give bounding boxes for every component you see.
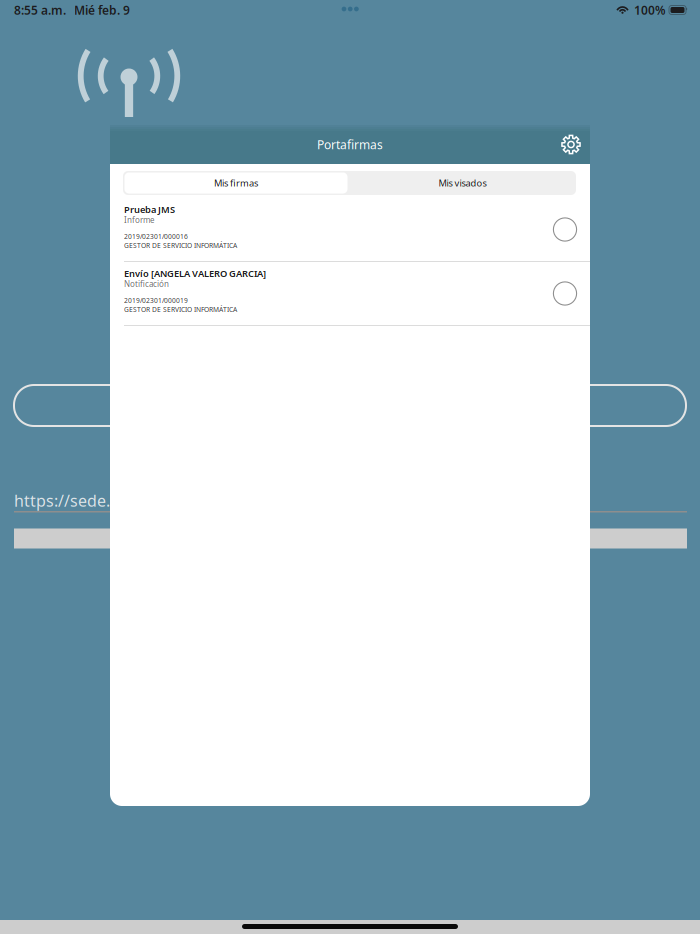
staticText: Portafirmas <box>317 136 383 152</box>
staticText: Mié feb. 9 <box>74 2 130 18</box>
staticText: Prueba JMS <box>124 203 175 216</box>
button[interactable]: Ajustes <box>552 125 590 164</box>
button[interactable]: Mis firmas <box>123 171 349 195</box>
staticText: 8:55 a.m. <box>14 2 66 18</box>
button[interactable]: Prueba JMS <box>110 198 590 262</box>
staticText: 2019/02301/000019 <box>124 296 188 305</box>
staticText: https://sede.murciaeduca.es/portafirmas <box>14 490 326 511</box>
staticText: 2019/02301/000016 <box>124 232 188 241</box>
staticText: Notificación <box>124 279 169 289</box>
staticText: GESTOR DE SERVICIO INFORMÁTICA <box>124 241 237 250</box>
staticText: Mis visados <box>438 177 486 189</box>
staticText: 100% <box>634 2 666 18</box>
staticText: Informe <box>124 215 155 225</box>
staticText: Mis firmas <box>214 177 258 189</box>
button[interactable]: Envío [ANGELA VALERO GARCIA] <box>110 262 590 326</box>
staticText: GESTOR DE SERVICIO INFORMÁTICA <box>124 305 237 314</box>
staticText: Envío [ANGELA VALERO GARCIA] <box>124 267 266 280</box>
button[interactable]: Mis visados <box>349 171 576 195</box>
